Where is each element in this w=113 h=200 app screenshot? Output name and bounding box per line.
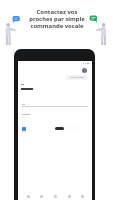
button[interactable]: Profile <box>82 68 87 73</box>
button[interactable]: Send <box>55 127 64 130</box>
button[interactable]: Tab 3 <box>65 191 73 200</box>
button[interactable]: Tab 2 <box>51 191 59 200</box>
button[interactable]: Tab 4 <box>78 191 86 200</box>
staticText: Contactez vos proches par simple command… <box>29 8 85 30</box>
button[interactable]: Tab 0 <box>24 191 32 200</box>
button[interactable]: Tab 1 <box>37 191 45 200</box>
button[interactable]: Checkbox <box>22 127 26 131</box>
